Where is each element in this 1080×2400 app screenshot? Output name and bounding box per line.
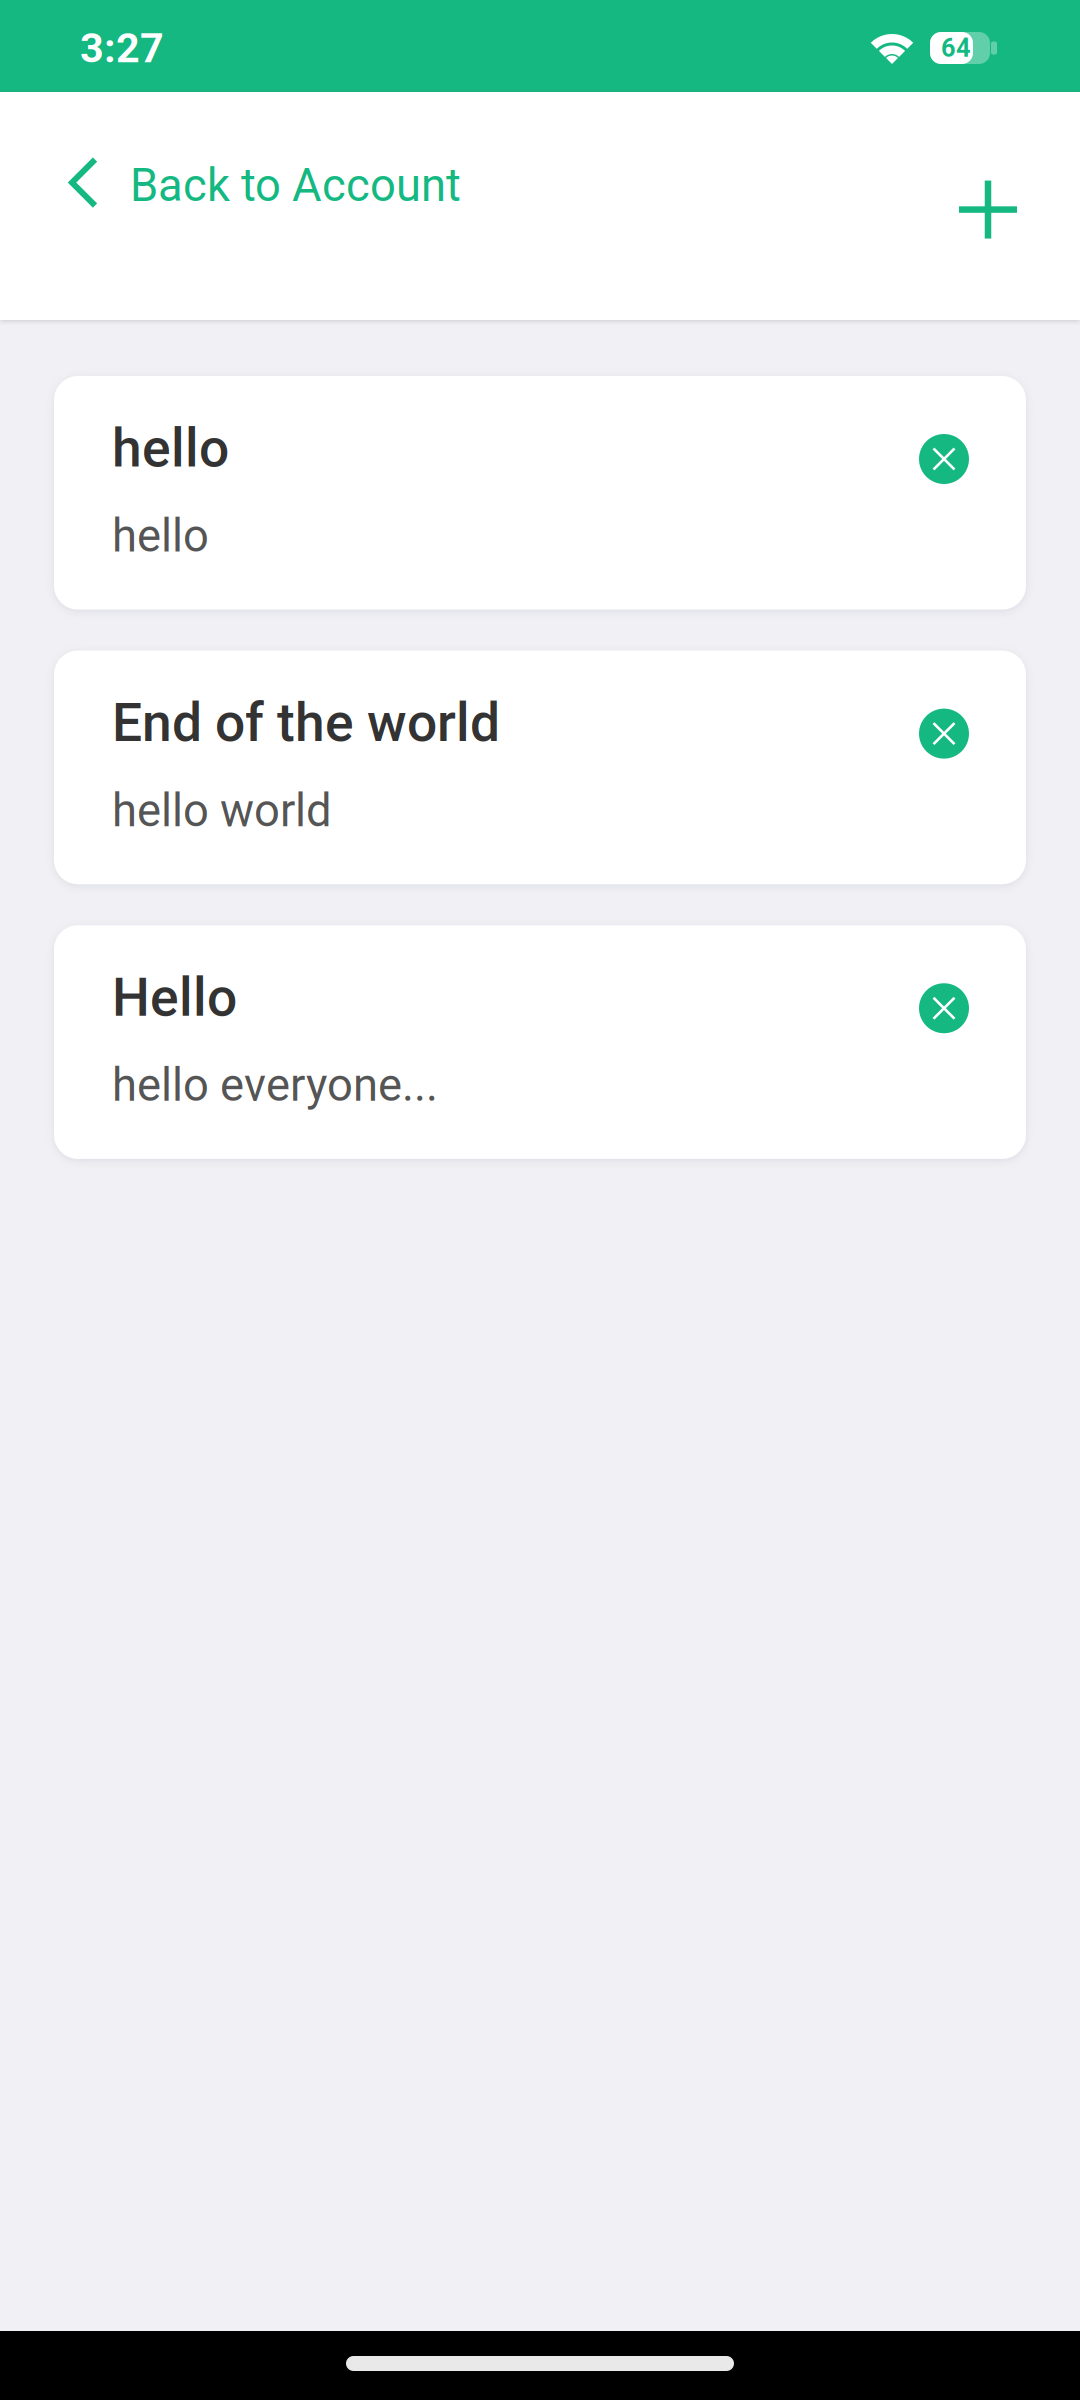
staticText: End of the world bbox=[112, 692, 500, 754]
staticText: hello world bbox=[112, 784, 332, 837]
staticText: hello bbox=[112, 509, 209, 563]
button[interactable]: Back to Account bbox=[0, 151, 485, 258]
button[interactable]: Remove note bbox=[919, 709, 969, 759]
staticText: hello everyone... bbox=[112, 1059, 438, 1112]
button[interactable]: hello bbox=[54, 376, 1026, 610]
staticText: Hello bbox=[112, 966, 237, 1029]
button[interactable]: Add note bbox=[935, 163, 1080, 247]
button[interactable]: Remove note bbox=[919, 434, 969, 484]
staticText: 3:27 bbox=[80, 24, 164, 72]
staticText: hello bbox=[112, 417, 229, 479]
button[interactable]: End of the world bbox=[54, 651, 1026, 884]
button[interactable]: Remove note bbox=[919, 983, 969, 1033]
staticText: 64 bbox=[941, 33, 971, 63]
staticText: Back to Account bbox=[130, 159, 461, 212]
button[interactable]: Hello bbox=[54, 925, 1026, 1159]
